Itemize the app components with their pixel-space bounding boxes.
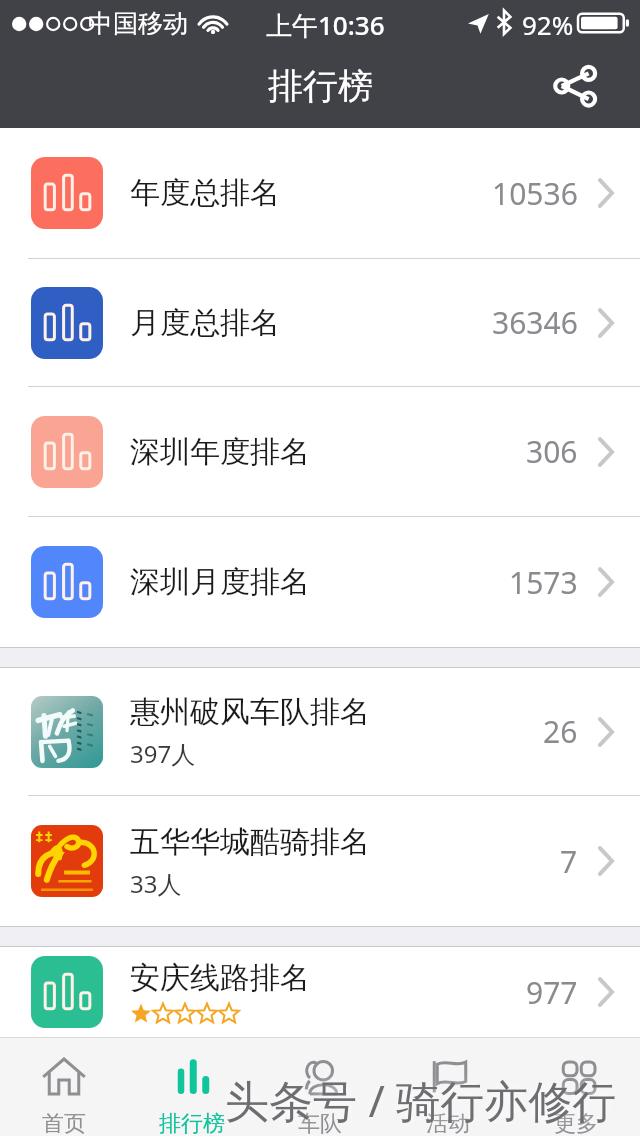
staticText: 排行榜 <box>268 64 373 108</box>
staticText: 深圳月度排名 <box>130 563 310 601</box>
staticText: 活动 <box>426 1110 470 1136</box>
staticText: 更多 <box>554 1110 598 1136</box>
staticText: 1573 <box>509 562 578 603</box>
button[interactable]: Share <box>541 52 611 120</box>
staticText: 年度总排名 <box>130 174 280 212</box>
staticText: 深圳年度排名 <box>130 433 310 471</box>
button[interactable]: 活动 <box>384 1038 512 1136</box>
staticText: 排行榜 <box>159 1110 225 1136</box>
button[interactable]: 年度总排名 <box>0 128 640 258</box>
staticText: 92% <box>522 7 574 42</box>
staticText: 五华华城酷骑排名 <box>130 823 370 861</box>
staticText: 月度总排名 <box>130 304 280 342</box>
staticText: 安庆线路排名 <box>130 959 310 997</box>
button[interactable]: 惠州破风车队排名 <box>0 668 640 795</box>
button[interactable]: 首页 <box>0 1038 128 1136</box>
staticText: 10536 <box>492 173 578 214</box>
staticText: 车队 <box>298 1110 342 1136</box>
staticText: 33人 <box>130 867 182 900</box>
button[interactable]: 五华华城酷骑排名 <box>0 796 640 926</box>
staticText: 惠州破风车队排名 <box>130 693 370 731</box>
staticText: 26 <box>543 711 578 752</box>
staticText: 36346 <box>492 302 578 343</box>
button[interactable]: 月度总排名 <box>0 259 640 386</box>
staticText: 首页 <box>42 1110 86 1136</box>
button[interactable]: 排行榜 <box>128 1038 256 1136</box>
button[interactable]: 深圳月度排名 <box>0 517 640 647</box>
staticText: 头条号 / 骑行亦修行 <box>225 1070 617 1130</box>
button[interactable]: 车队 <box>256 1038 384 1136</box>
staticText: 977 <box>526 972 578 1013</box>
button[interactable]: 更多 <box>512 1038 640 1136</box>
staticText: 中国移动 <box>88 8 188 39</box>
staticText: 397人 <box>130 737 196 770</box>
staticText: 7 <box>560 841 578 882</box>
button[interactable]: 深圳年度排名 <box>0 387 640 516</box>
staticText: 306 <box>526 431 578 472</box>
staticText: 上午10:36 <box>266 7 385 43</box>
button[interactable]: 安庆线路排名 <box>0 947 640 1037</box>
